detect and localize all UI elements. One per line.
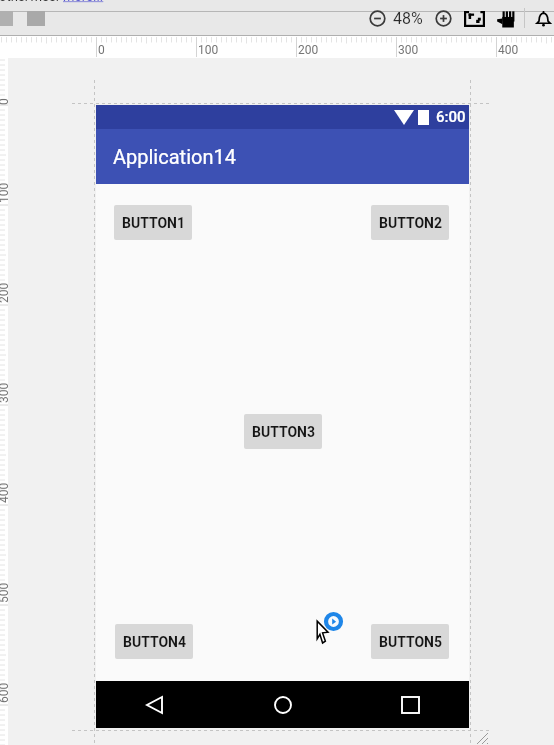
button[interactable]: Zoom out (369, 10, 386, 27)
button[interactable]: BUTTON3 (244, 414, 322, 449)
button[interactable]: Zoom in (435, 10, 452, 27)
staticText: 400 (498, 43, 519, 57)
button[interactable]: Back (113, 681, 195, 728)
staticText: BUTTON5 (379, 634, 442, 650)
staticText: BUTTON1 (122, 215, 185, 231)
staticText: BUTTON3 (252, 424, 315, 440)
staticText: 300 (398, 43, 419, 57)
button[interactable]: Zoom to fit (464, 11, 485, 27)
button[interactable]: BUTTON2 (371, 205, 449, 240)
button[interactable]: BUTTON4 (115, 624, 193, 659)
button[interactable]: Pan (496, 11, 515, 28)
button[interactable]: Home (242, 681, 324, 728)
staticText: 100 (198, 43, 219, 57)
button[interactable]: BUTTON1 (114, 205, 192, 240)
staticText: BUTTON2 (379, 215, 442, 231)
staticText: 48% (393, 9, 423, 28)
button[interactable]: BUTTON5 (371, 624, 449, 659)
staticText: BUTTON4 (123, 634, 186, 650)
button[interactable]: Notifications (536, 10, 551, 27)
staticText: Application14 (113, 145, 236, 168)
button[interactable]: more... (63, 0, 104, 4)
button[interactable]: Recent apps (369, 681, 451, 728)
staticText: 200 (298, 43, 319, 57)
staticText: 0 (98, 43, 105, 57)
staticText: otherwise: (0, 0, 63, 4)
staticText: 6:00 (436, 108, 466, 126)
